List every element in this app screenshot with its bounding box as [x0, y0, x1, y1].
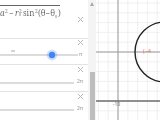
staticText: 2: [5, 8, 8, 15]
button[interactable]: Delete row: [76, 15, 85, 24]
button[interactable]: [0, 64, 88, 91]
staticText: sin: [23, 7, 35, 18]
staticText: (θ−θ: [38, 7, 55, 18]
staticText: ): [58, 7, 61, 18]
button[interactable]: [0, 91, 88, 120]
staticText: (−4: [143, 47, 151, 54]
button[interactable]: Delete row: [76, 92, 85, 101]
staticText: r: [15, 7, 19, 18]
button[interactable]: Delete row: [76, 38, 85, 47]
button[interactable]: [0, 38, 88, 64]
staticText: 2: [19, 8, 22, 15]
staticText: a: [0, 7, 5, 18]
staticText: 2π: [77, 105, 84, 112]
staticText: -10: [113, 101, 121, 108]
staticText: 0: [19, 12, 22, 17]
button[interactable]: Delete row: [76, 65, 85, 74]
button[interactable]: a: [0, 0, 88, 38]
staticText: π: [79, 51, 83, 58]
staticText: 0: [55, 14, 58, 19]
staticText: −: [9, 7, 14, 18]
staticText: 2: [35, 8, 38, 15]
staticText: 2π: [77, 78, 84, 85]
